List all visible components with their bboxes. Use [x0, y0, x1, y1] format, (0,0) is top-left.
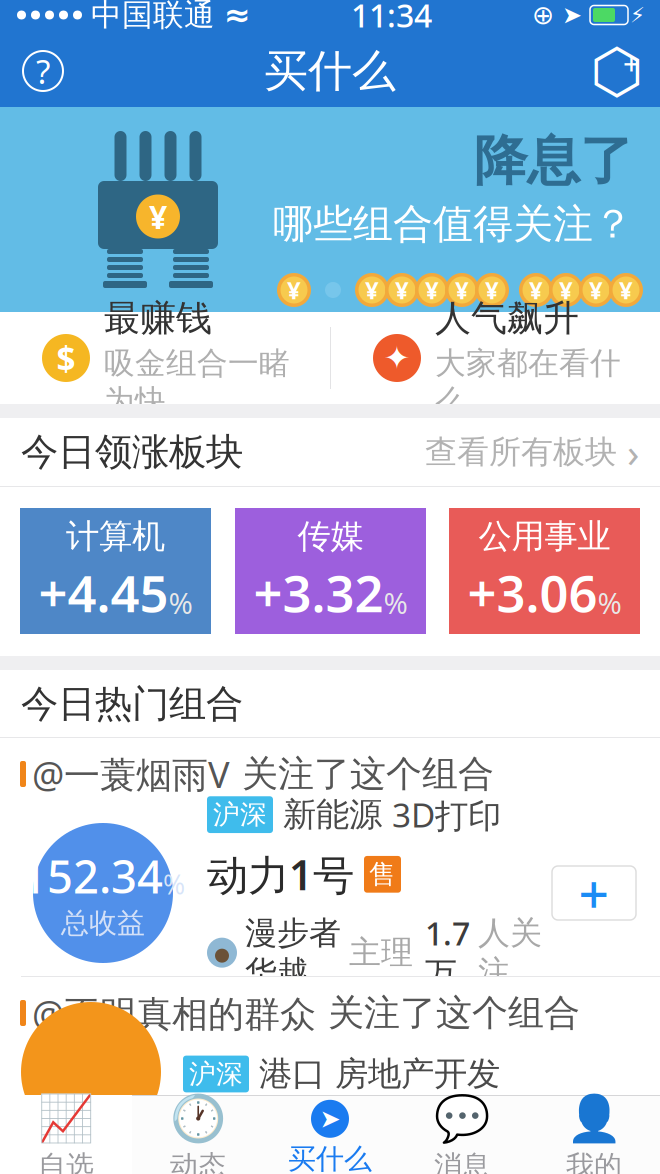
staticText: 新能源	[283, 794, 382, 835]
staticText: $	[56, 336, 75, 380]
staticText: ⚡︎	[630, 3, 645, 27]
button[interactable]: 添加自选	[552, 858, 636, 928]
staticText: ¥	[529, 274, 543, 306]
staticText: +	[578, 858, 609, 928]
staticText: ¥	[589, 274, 603, 306]
staticText: ✦	[383, 340, 410, 376]
staticText: 总收益	[61, 906, 145, 940]
staticText: +3.32	[253, 559, 383, 626]
button[interactable]: @一蓑烟雨V	[0, 738, 660, 810]
staticText: 沪深	[213, 798, 267, 831]
staticText: 最赚钱	[104, 296, 212, 340]
staticText: +4.45	[38, 559, 168, 626]
staticText: 消息	[434, 1149, 490, 1174]
staticText: 沪深	[189, 1058, 243, 1090]
staticText: ⊕	[532, 0, 554, 30]
staticText: 吸金组合一睹为快	[104, 344, 290, 420]
staticText: 哪些组合值得关注？	[273, 200, 633, 249]
staticText: 自选	[38, 1149, 94, 1174]
button[interactable]: 计算机	[20, 508, 211, 634]
staticText: ?	[36, 49, 50, 93]
staticText: 买什么	[288, 1142, 372, 1174]
staticText: ¥	[559, 274, 573, 306]
staticText: 我的	[566, 1149, 622, 1174]
staticText: 关注了这个组合	[242, 752, 494, 796]
staticText: 港口	[259, 1053, 325, 1094]
button[interactable]: $	[0, 312, 330, 404]
button[interactable]: 公用事业	[449, 508, 640, 634]
staticText: ¥	[425, 274, 439, 306]
staticText: %	[383, 583, 407, 622]
staticText: 动态	[170, 1149, 226, 1174]
staticText: 152.34	[21, 846, 163, 906]
staticText: 关注了这个组合	[328, 991, 580, 1035]
staticText: 计算机	[66, 516, 165, 557]
staticText: 今日领涨板块	[21, 429, 243, 475]
staticText: ›	[627, 425, 639, 478]
button[interactable]: 帮助	[13, 39, 73, 103]
button[interactable]: 🕐	[132, 1095, 264, 1174]
staticText: 主理	[349, 933, 413, 972]
button[interactable]: 📈	[0, 1095, 132, 1174]
button[interactable]: 降息了，哪些组合值得关注	[0, 107, 660, 312]
button[interactable]: 今日领涨板块	[0, 418, 660, 486]
button[interactable]: 💬	[396, 1095, 528, 1174]
staticText: @不明真相的群众	[32, 989, 316, 1037]
staticText: ➤	[319, 1104, 340, 1133]
staticText: 📈	[38, 1093, 94, 1145]
staticText: ⬡	[590, 36, 644, 106]
staticText: ¥	[395, 274, 409, 306]
staticText: 买什么	[264, 44, 396, 98]
staticText: 查看所有板块	[425, 432, 617, 472]
staticText: %	[597, 583, 621, 622]
staticText: 公用事业	[478, 516, 610, 557]
staticText: 动力1号	[207, 847, 354, 902]
staticText: ➤	[562, 1, 582, 29]
staticText: 🕐	[170, 1093, 226, 1145]
staticText: 大家都在看什么	[435, 344, 621, 420]
staticText: 售	[369, 858, 396, 891]
staticText: 👤	[566, 1093, 622, 1145]
button[interactable]: ➤	[264, 1095, 396, 1174]
staticText: 降息了	[474, 128, 633, 194]
staticText: ¥	[619, 274, 633, 306]
button[interactable]: 152.34	[0, 810, 660, 976]
staticText: 今日热门组合	[21, 681, 243, 727]
staticText: 1.7万	[425, 912, 470, 994]
staticText: 💬	[434, 1093, 490, 1145]
staticText: 漫步者华越	[245, 913, 341, 992]
staticText: ¥	[485, 274, 499, 306]
staticText: %	[163, 866, 185, 902]
staticText: 传媒	[297, 516, 363, 557]
button[interactable]: 👤	[528, 1095, 660, 1174]
staticText: ¥	[287, 274, 301, 306]
staticText: @一蓑烟雨V	[32, 750, 230, 798]
staticText: 3D打印	[392, 792, 501, 837]
staticText: %	[168, 583, 192, 622]
staticText: 房地产开发	[335, 1053, 500, 1094]
staticText: ¥	[455, 274, 469, 306]
button[interactable]: ✦	[331, 312, 660, 404]
button[interactable]: @不明真相的群众	[0, 977, 660, 1049]
staticText: +3.06	[467, 559, 597, 626]
staticText: ¥	[149, 195, 167, 238]
staticText: 11:34	[351, 0, 432, 36]
button[interactable]: 创建组合	[587, 39, 647, 103]
staticText: ≈	[224, 0, 251, 33]
button[interactable]: 传媒	[235, 508, 426, 634]
staticText: 中国联通	[91, 0, 215, 34]
staticText: 人气飙升	[435, 296, 579, 340]
staticText: +	[623, 43, 640, 82]
staticText: ¥	[365, 274, 379, 306]
staticText: 人关注	[478, 913, 542, 992]
